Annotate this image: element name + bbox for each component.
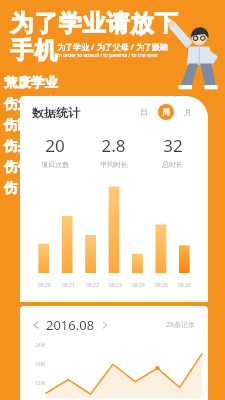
- staticText: 项目次数: [41, 160, 69, 169]
- staticText: 平均时长: [100, 160, 128, 169]
- staticText: In order to school / to parents / to the…: [57, 52, 158, 59]
- staticText: 09.23: [109, 282, 122, 289]
- staticText: 18时: [35, 361, 46, 368]
- staticText: 09.20: [38, 282, 51, 289]
- staticText: 荒废学业: [4, 74, 58, 90]
- staticText: 周: [162, 107, 170, 117]
- staticText: 12时: [35, 380, 46, 387]
- button[interactable]: Next month: [99, 319, 111, 331]
- staticText: 09.25: [155, 282, 168, 289]
- staticText: 09.22: [86, 282, 99, 289]
- staticText: 手机: [10, 36, 58, 65]
- staticText: 24时: [35, 342, 46, 349]
- staticText: 伤父母心: [4, 95, 58, 111]
- button[interactable]: 周: [158, 104, 174, 120]
- staticText: 总时长: [162, 160, 183, 169]
- button[interactable]: 32: [143, 134, 202, 169]
- button[interactable]: 2.8: [84, 134, 143, 169]
- staticText: 数据统计: [32, 105, 80, 120]
- staticText: 伤: [4, 179, 18, 195]
- staticText: 伤身体: [4, 137, 45, 153]
- staticText: 为了学业 / 为了父母 / 为了眼睛: [57, 41, 168, 52]
- button[interactable]: 20: [26, 134, 84, 169]
- staticText: 28条记录: [166, 320, 196, 330]
- button[interactable]: 月: [180, 104, 196, 120]
- staticText: 09.24: [132, 282, 145, 289]
- staticText: 20: [45, 134, 65, 157]
- staticText: 09.26: [178, 282, 191, 289]
- staticText: 伤钱: [4, 158, 31, 174]
- staticText: 2016.08: [46, 316, 95, 334]
- staticText: 09.21: [62, 282, 75, 289]
- staticText: 伤眼睛: [4, 116, 45, 132]
- staticText: 32: [163, 134, 183, 157]
- staticText: 2.8: [101, 134, 126, 157]
- staticText: 日: [140, 107, 148, 117]
- button[interactable]: Previous month: [30, 319, 42, 331]
- staticText: 为了学业请放下: [10, 9, 178, 38]
- button[interactable]: 日: [136, 104, 152, 120]
- staticText: 月: [184, 107, 192, 117]
